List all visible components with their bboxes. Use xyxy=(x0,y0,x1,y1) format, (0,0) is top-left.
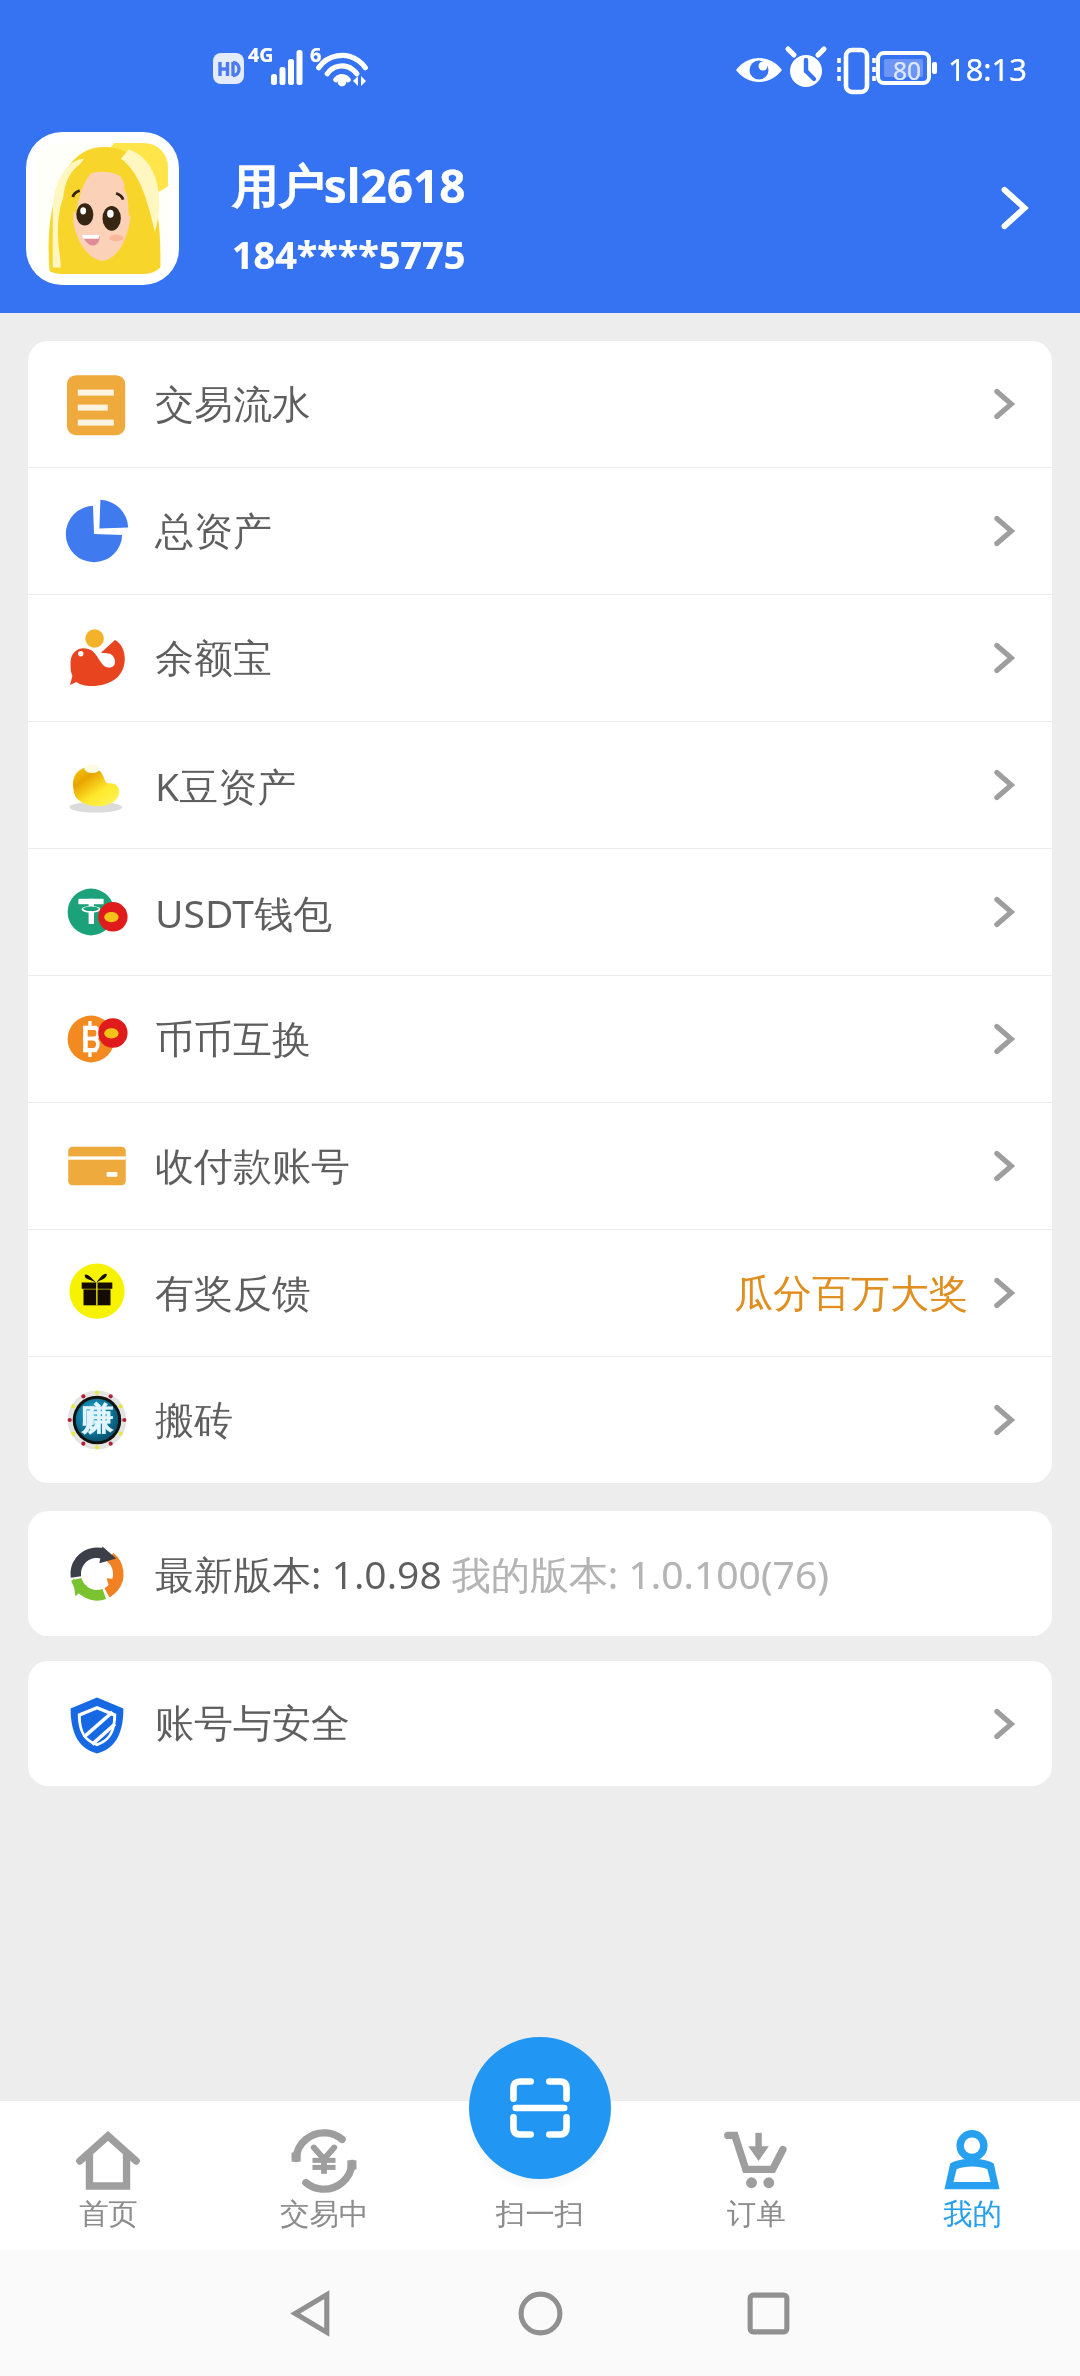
staticText: 18:13 xyxy=(948,48,1027,90)
button[interactable]: K豆资产 xyxy=(28,722,1052,848)
staticText: 184****5775 xyxy=(232,229,466,280)
staticText: 搬砖 xyxy=(155,1396,233,1445)
staticText: USDT钱包 xyxy=(155,886,332,939)
button[interactable]: 币币互换 xyxy=(28,976,1052,1102)
button[interactable]: 扫一扫 xyxy=(432,2101,648,2250)
staticText: 有奖反馈 xyxy=(155,1269,311,1318)
staticText: 80 xyxy=(893,54,922,88)
staticText: 用户sl2618 xyxy=(232,154,466,217)
staticText: 交易中 xyxy=(280,2196,369,2233)
staticText: 余额宝 xyxy=(155,634,272,683)
staticText: 瓜分百万大奖 xyxy=(734,1269,968,1318)
button[interactable]: USDT钱包 xyxy=(28,849,1052,975)
staticText: 最新版本: 1.0.98 我的版本: 1.0.100(76) xyxy=(155,1547,829,1600)
staticText: 我的 xyxy=(943,2196,1002,2233)
button[interactable]: 收付款账号 xyxy=(28,1103,1052,1229)
button[interactable]: 赚 xyxy=(28,1357,1052,1483)
button[interactable]: 总资产 xyxy=(28,468,1052,594)
button[interactable]: 余额宝 xyxy=(28,595,1052,721)
button[interactable]: Home xyxy=(426,2259,654,2367)
staticText: 首页 xyxy=(79,2196,138,2233)
staticText: 6 xyxy=(310,41,322,68)
staticText: 交易流水 xyxy=(155,380,311,429)
staticText: K豆资产 xyxy=(155,759,297,812)
button[interactable]: 有奖反馈 xyxy=(28,1230,1052,1356)
staticText: 扫一扫 xyxy=(496,2196,585,2233)
staticText: 赚 xyxy=(81,1400,113,1440)
staticText: 收付款账号 xyxy=(155,1142,350,1191)
button[interactable]: 账号与安全 xyxy=(28,1661,1052,1786)
staticText: 总资产 xyxy=(155,507,272,556)
button[interactable]: 用户sl2618 xyxy=(0,103,1080,313)
button[interactable]: 我的 xyxy=(864,2101,1080,2250)
button[interactable]: 订单 xyxy=(648,2101,864,2250)
staticText: 币币互换 xyxy=(155,1015,311,1064)
button[interactable]: 首页 xyxy=(0,2101,216,2250)
staticText: 账号与安全 xyxy=(155,1699,350,1748)
button[interactable]: 最新版本: 1.0.98 我的版本: 1.0.100(76) xyxy=(28,1511,1052,1636)
button[interactable]: Recents xyxy=(654,2259,882,2367)
staticText: 订单 xyxy=(727,2196,786,2233)
button[interactable]: 交易流水 xyxy=(28,341,1052,467)
button[interactable]: Back xyxy=(198,2259,426,2367)
button[interactable]: 交易中 xyxy=(216,2101,432,2250)
staticText: 4G xyxy=(248,41,274,68)
other: Profile xyxy=(990,184,1038,232)
button[interactable]: Scan xyxy=(469,2037,611,2179)
